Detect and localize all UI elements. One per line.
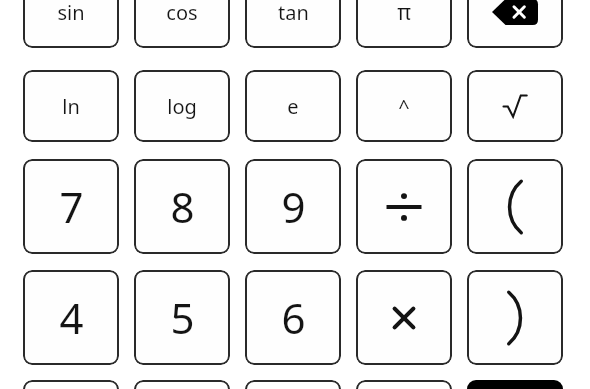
button[interactable]: Backspace [467,0,563,48]
button[interactable]: 6 [245,270,341,365]
button[interactable]: 4 [23,270,119,365]
button[interactable]: Divide [356,159,452,254]
staticText: 7 [59,178,84,235]
button[interactable]: cos [134,0,230,48]
button[interactable]: ln [23,70,119,142]
staticText: ^ [398,93,410,120]
button[interactable]: 3 [245,380,341,389]
staticText: cos [166,0,198,26]
button[interactable]: tan [245,0,341,48]
staticText: 9 [281,178,306,235]
button[interactable]: ^ [356,70,452,142]
button[interactable]: Multiply [356,270,452,365]
staticText: ln [62,93,80,120]
button[interactable]: π [356,0,452,48]
button[interactable]: Close parenthesis [467,270,563,365]
button[interactable]: log [134,70,230,142]
button[interactable]: 8 [134,159,230,254]
button[interactable]: 5 [134,270,230,365]
staticText: 4 [59,289,84,346]
staticText: log [167,93,197,120]
button[interactable]: e [245,70,341,142]
staticText: π [397,0,411,27]
button[interactable]: 7 [23,159,119,254]
staticText: 8 [170,178,195,235]
button[interactable]: 1 [23,380,119,389]
button[interactable]: − [356,380,452,389]
button[interactable]: Open parenthesis [467,159,563,254]
staticText: 6 [281,289,306,346]
button[interactable]: sin [23,0,119,48]
button[interactable]: Square root [467,70,563,142]
staticText: e [287,93,299,120]
staticText: sin [57,0,85,26]
staticText: tan [278,0,309,26]
button[interactable]: Equals [467,380,563,389]
staticText: 5 [170,289,195,346]
button[interactable]: 9 [245,159,341,254]
button[interactable]: 2 [134,380,230,389]
